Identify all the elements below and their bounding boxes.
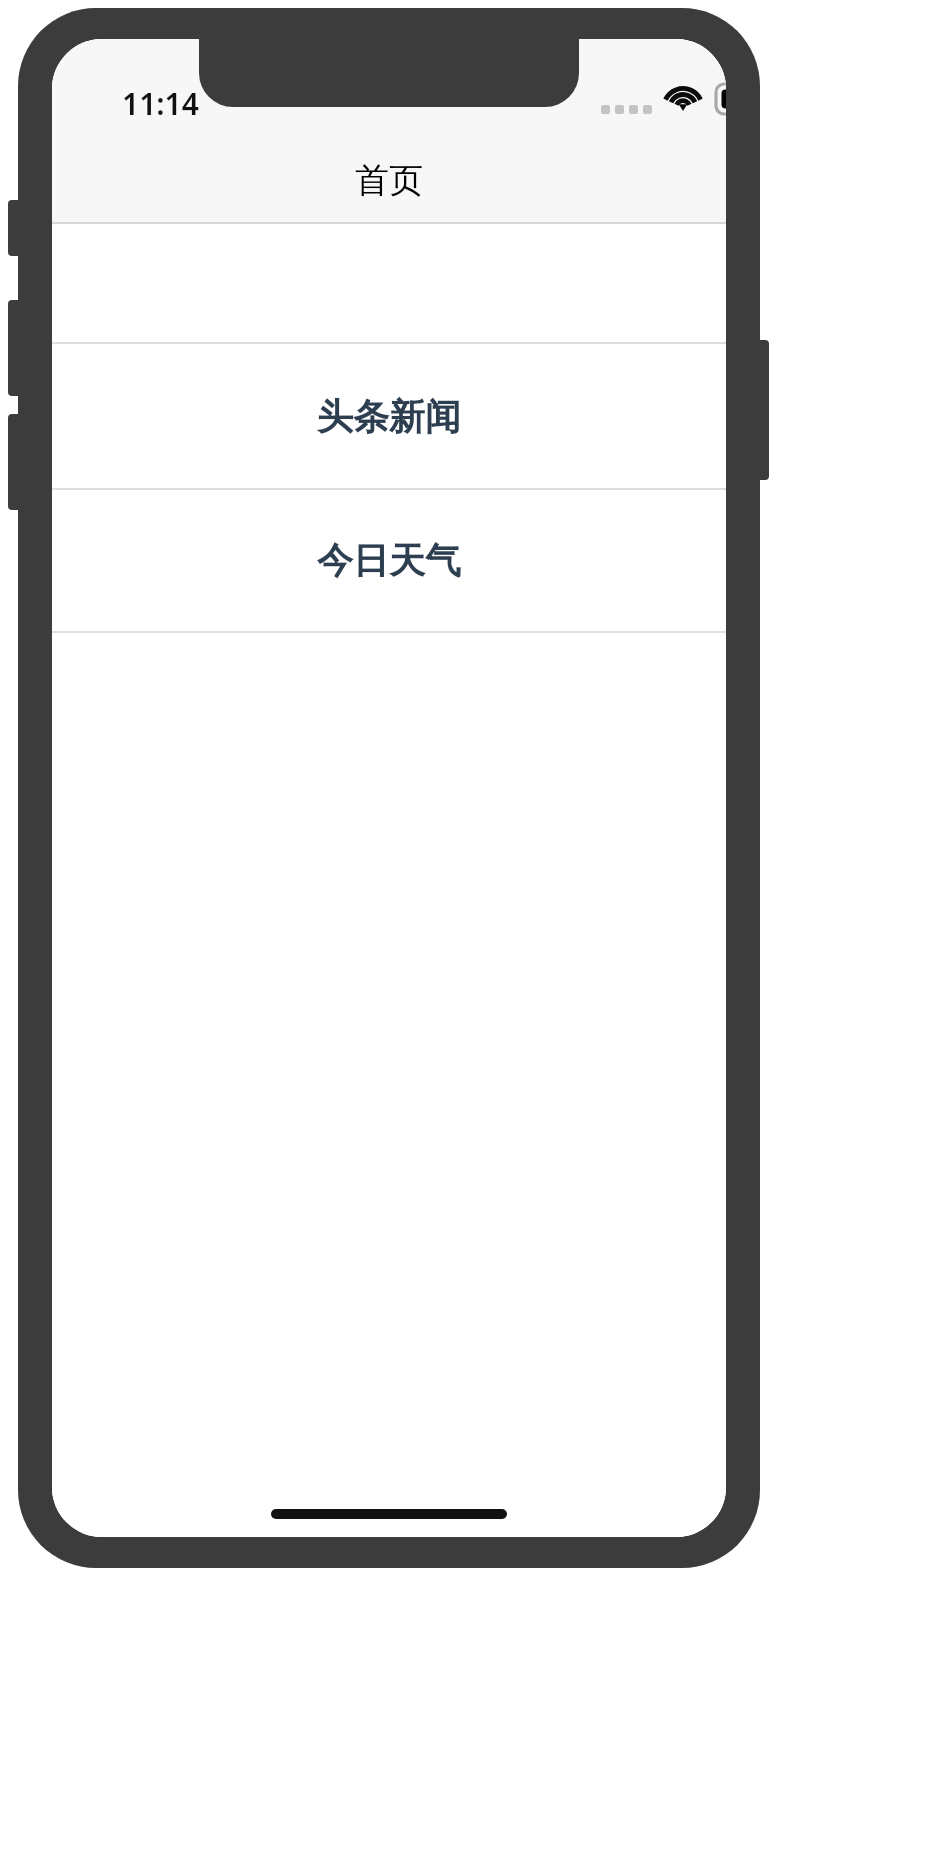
button[interactable]: 头条新闻 (52, 344, 726, 488)
staticText: 头条新闻 (317, 394, 461, 439)
other: Battery (716, 84, 726, 114)
button[interactable]: 今日天气 (52, 490, 726, 631)
staticText: 首页 (355, 159, 423, 202)
other: Wi‑Fi (662, 79, 704, 115)
staticText: 11:14 (122, 83, 199, 124)
staticText: 今日天气 (317, 538, 461, 583)
